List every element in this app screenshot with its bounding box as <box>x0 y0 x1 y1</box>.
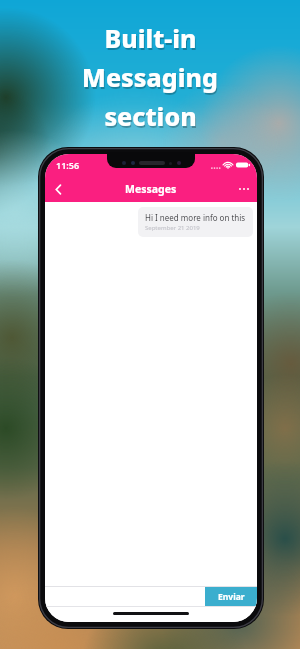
staticText: 11:56 <box>56 159 80 171</box>
button[interactable]: More options <box>231 176 257 202</box>
staticText: section <box>105 101 198 135</box>
button[interactable] <box>45 587 205 606</box>
staticText: Messages <box>125 182 177 196</box>
button[interactable]: Back <box>45 176 71 202</box>
staticText: Built-in <box>104 21 197 55</box>
button[interactable]: Hi I need more info on this <box>138 207 253 237</box>
staticText: Hi I need more info on this <box>145 212 246 223</box>
staticText: Messaging <box>82 60 218 94</box>
staticText: Built-in <box>105 23 198 57</box>
staticText: Enviar <box>218 591 245 603</box>
staticText: September 21 2019 <box>145 224 200 232</box>
staticText: section <box>104 99 197 133</box>
button[interactable]: Enviar <box>205 587 257 606</box>
staticText: Messaging <box>83 62 219 96</box>
